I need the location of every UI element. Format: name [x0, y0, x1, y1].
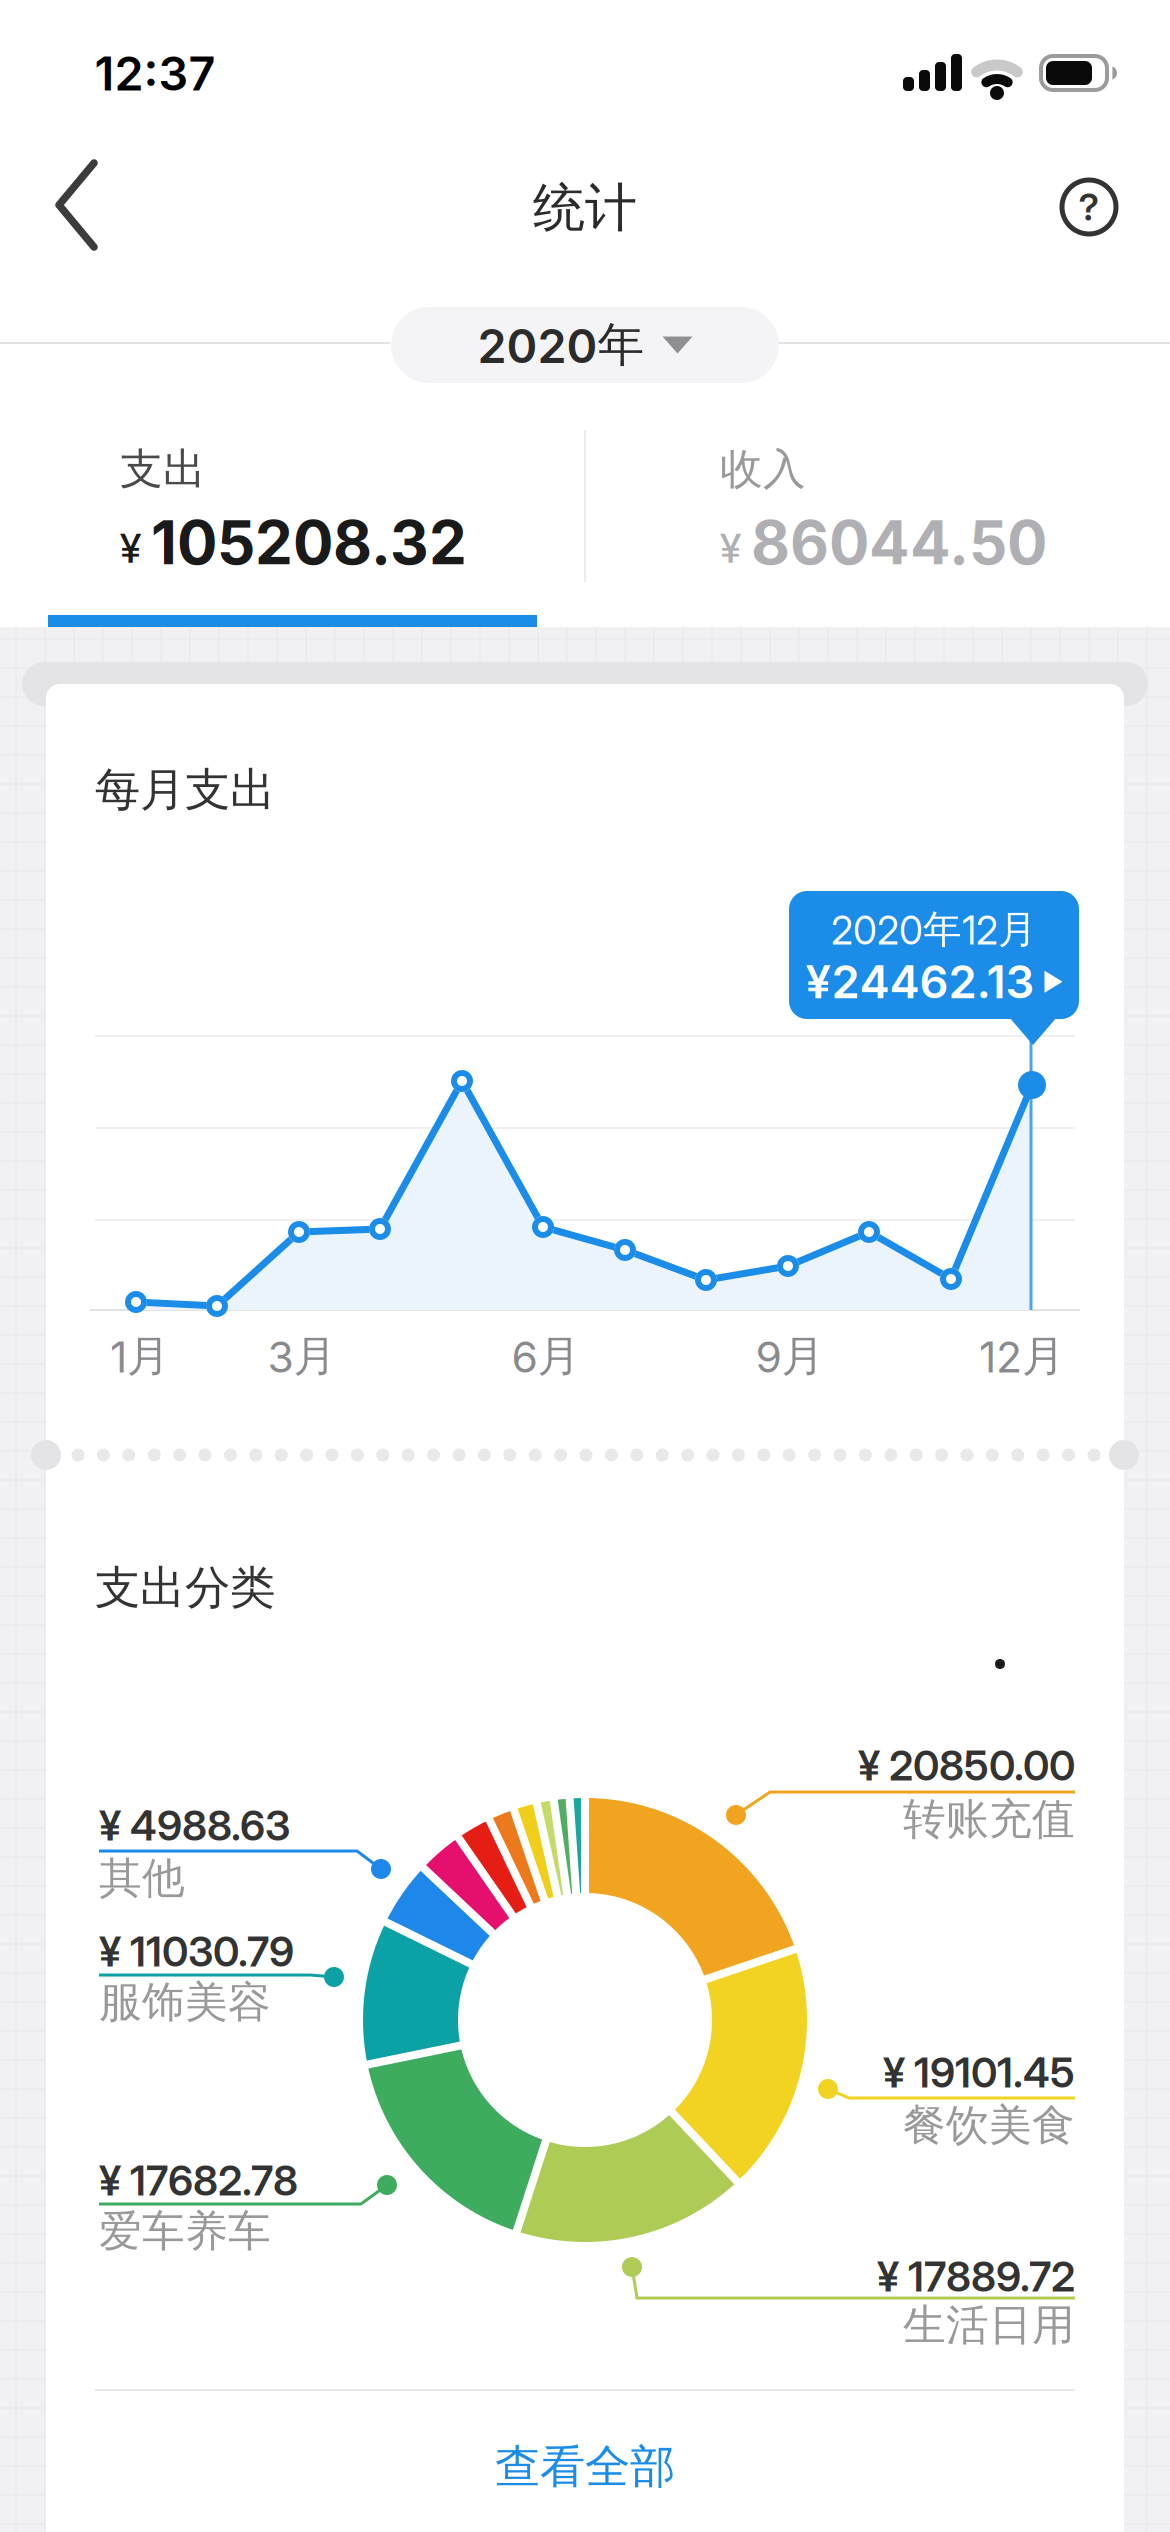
staticText: 2020年12月 [831, 906, 1037, 953]
staticText: 爱车养车 [99, 2205, 271, 2257]
staticText: 9月 [755, 1330, 824, 1382]
staticText: 6月 [511, 1330, 580, 1382]
staticText: ¥ 11030.79 [99, 1927, 294, 1976]
staticText: 其他 [99, 1852, 185, 1904]
staticText: ? [1078, 185, 1099, 229]
staticText: ¥24462.13 [805, 955, 1034, 1008]
staticText: 收入 [720, 443, 806, 495]
staticText: 服饰美容 [99, 1976, 271, 2028]
staticText: ¥ [120, 525, 141, 572]
staticText: 3月 [267, 1330, 336, 1382]
button[interactable]: 2020年 [391, 307, 779, 383]
staticText: 统计 [533, 176, 637, 240]
button[interactable]: 2020年12月 [764, 891, 1104, 1045]
button[interactable]: Help [1058, 176, 1120, 238]
staticText: ¥ 20850.00 [858, 1741, 1075, 1790]
staticText: 105208.32 [151, 507, 467, 578]
staticText: 2020年 [477, 316, 644, 374]
staticText: 查看全部 [495, 2439, 675, 2495]
staticText: 86044.50 [751, 507, 1047, 578]
staticText: ¥ 19101.45 [883, 2048, 1075, 2097]
staticText: ¥ 4988.63 [99, 1801, 290, 1850]
button[interactable]: 查看全部 [385, 2412, 785, 2522]
staticText: 每月支出 [95, 762, 275, 818]
staticText: ¥ [720, 525, 741, 572]
staticText: 支出分类 [95, 1560, 275, 1616]
button[interactable]: 收入 [585, 425, 1074, 627]
button[interactable]: Back [50, 156, 104, 254]
staticText: 餐饮美食 [903, 2099, 1075, 2151]
staticText: 1月 [110, 1330, 170, 1382]
staticText: 支出 [120, 443, 206, 495]
staticText: 12:37 [94, 46, 215, 101]
staticText: 12月 [979, 1330, 1065, 1382]
staticText: ¥ 17682.78 [99, 2156, 298, 2205]
staticText: ¥ 17889.72 [877, 2252, 1075, 2301]
staticText: 生活日用 [903, 2299, 1075, 2351]
staticText: 转账充值 [903, 1793, 1075, 1845]
button[interactable]: 支出 [48, 425, 537, 627]
